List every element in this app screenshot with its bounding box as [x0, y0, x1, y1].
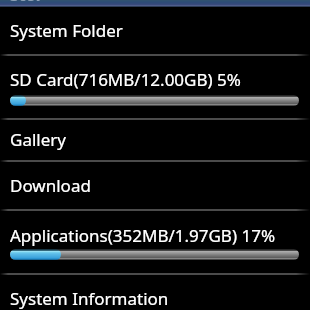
button[interactable]: System Folder: [0, 8, 310, 55]
staticText: SD Card(716MB/12.00GB) 5%: [10, 68, 241, 91]
button[interactable]: Download: [0, 161, 310, 210]
button[interactable]: System Information: [0, 274, 310, 310]
button[interactable]: Applications 352MB of 1.97GB, 17 percent…: [0, 210, 310, 274]
staticText: Applications(352MB/1.97GB) 17%: [10, 224, 276, 247]
staticText: System Folder: [10, 19, 123, 42]
button[interactable]: Gallery: [0, 119, 310, 161]
button[interactable]: SD Card 716MB of 12.00GB, 5 percent used: [0, 55, 310, 119]
staticText: Gallery: [10, 128, 66, 151]
staticText: Download: [10, 174, 91, 197]
staticText: Stor: [10, 0, 43, 6]
staticText: System Information: [10, 287, 169, 310]
